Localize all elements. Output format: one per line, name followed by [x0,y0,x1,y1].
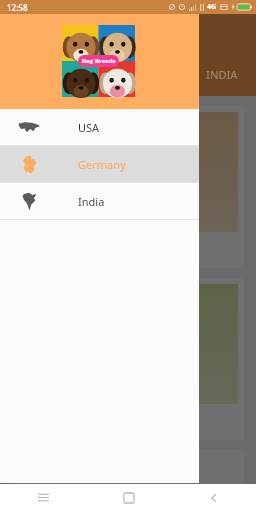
button[interactable]: Back [171,484,256,512]
staticText: 4G [207,2,217,12]
staticText: Dog Breeds [81,57,116,65]
staticText: USA [78,120,100,135]
staticText: INDIA [206,67,238,82]
button[interactable]: USA [0,109,199,145]
staticText: India [78,194,105,209]
button[interactable]: Germany [0,146,199,182]
button[interactable]: Home [86,484,171,512]
staticText: Germany [78,157,126,172]
button[interactable]: Recent apps [0,484,86,512]
staticText: 12:58 [7,2,28,13]
button[interactable]: India [0,183,199,219]
